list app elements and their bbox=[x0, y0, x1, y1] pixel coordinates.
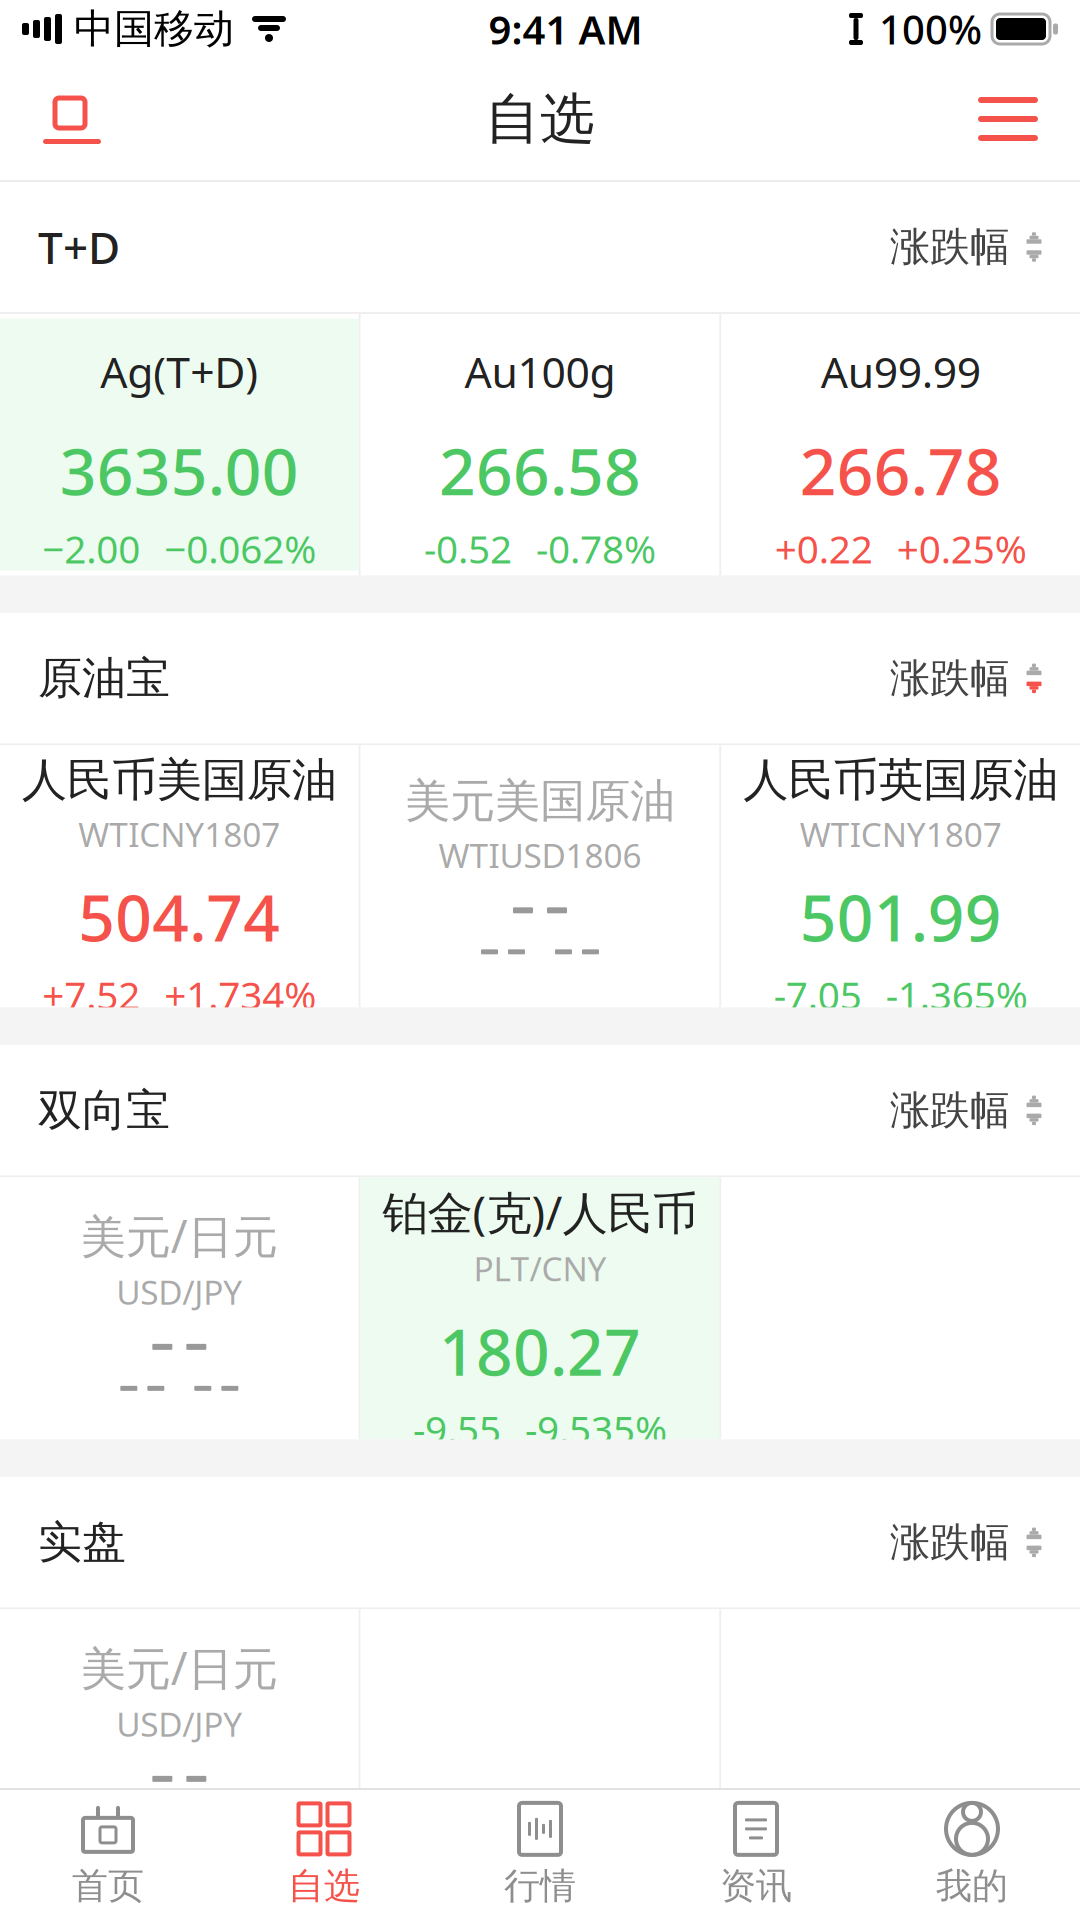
staticText: +7.52 bbox=[42, 969, 140, 1020]
staticText: 100% bbox=[879, 2, 982, 55]
staticText: 9:41 AM bbox=[488, 2, 642, 55]
staticText: -0.52 bbox=[424, 523, 512, 574]
staticText: 501.99 bbox=[800, 874, 1002, 959]
staticText: +0.22 bbox=[775, 523, 873, 574]
button[interactable]: Au99.99 bbox=[721, 319, 1080, 571]
staticText: 涨跌幅 bbox=[890, 654, 1010, 703]
staticText: 自选 bbox=[288, 1864, 360, 1908]
button[interactable]: 美元美国原油 bbox=[361, 745, 719, 1007]
staticText: 双向宝 bbox=[38, 1083, 170, 1137]
button[interactable]: 美元/日元 bbox=[0, 1609, 359, 1871]
staticText: −2.00 bbox=[42, 523, 140, 574]
staticText: 3635.00 bbox=[60, 428, 299, 513]
staticText: 266.78 bbox=[800, 428, 1002, 513]
button[interactable]: 编辑 bbox=[22, 69, 122, 169]
staticText: +1.734% bbox=[164, 969, 316, 1020]
staticText: 涨跌幅 bbox=[890, 1086, 1010, 1135]
staticText: 美元美国原油 bbox=[405, 773, 675, 829]
button[interactable]: T+D bbox=[0, 182, 1080, 312]
staticText: 人民币美国原油 bbox=[22, 752, 337, 808]
staticText: -7.05 bbox=[774, 969, 862, 1020]
staticText: 中国移动 bbox=[74, 4, 234, 53]
staticText: 180.27 bbox=[439, 1308, 641, 1393]
staticText: 首页 bbox=[72, 1864, 144, 1908]
staticText: 自选 bbox=[485, 85, 595, 152]
staticText: 行情 bbox=[504, 1864, 576, 1908]
staticText: 铂金(克)/人民币 bbox=[382, 1182, 697, 1242]
staticText: -9.535% bbox=[525, 1403, 667, 1455]
button[interactable]: 人民币美国原油 bbox=[0, 745, 359, 1007]
button[interactable]: 美元/日元 bbox=[0, 1177, 359, 1439]
staticText: USD/JPY bbox=[116, 1270, 242, 1314]
staticText: 人民币英国原油 bbox=[743, 752, 1058, 808]
staticText: 504.74 bbox=[78, 874, 280, 959]
button[interactable]: 铂金(克)/人民币 bbox=[361, 1177, 719, 1439]
staticText: -1.365% bbox=[886, 969, 1028, 1020]
button[interactable]: 自选 bbox=[216, 1790, 432, 1920]
button[interactable]: 双向宝 bbox=[0, 1045, 1080, 1175]
staticText: WTICNY1807 bbox=[78, 812, 280, 856]
staticText: 美元/日元 bbox=[81, 1637, 278, 1698]
staticText: PLT/CNY bbox=[473, 1246, 606, 1290]
staticText: 实盘 bbox=[38, 1515, 126, 1569]
staticText: 资讯 bbox=[720, 1864, 792, 1908]
button[interactable]: 资讯 bbox=[648, 1790, 864, 1920]
button[interactable]: 人民币英国原油 bbox=[721, 745, 1080, 1007]
staticText: 涨跌幅 bbox=[890, 222, 1010, 271]
button[interactable]: 原油宝 bbox=[0, 613, 1080, 743]
staticText: USD/JPY bbox=[116, 1702, 242, 1746]
staticText: WTICNY1807 bbox=[800, 812, 1002, 856]
staticText: WTIUSD1806 bbox=[438, 833, 641, 877]
button[interactable]: 菜单 bbox=[958, 69, 1058, 169]
staticText: -0.78% bbox=[536, 523, 656, 574]
staticText: Au100g bbox=[464, 343, 615, 400]
staticText: +0.25% bbox=[897, 523, 1027, 574]
button[interactable]: Ag(T+D) bbox=[0, 319, 359, 571]
staticText: 涨跌幅 bbox=[890, 1518, 1010, 1567]
staticText: 266.58 bbox=[439, 428, 641, 513]
staticText: 原油宝 bbox=[38, 651, 170, 705]
staticText: -9.55 bbox=[413, 1403, 501, 1455]
staticText: 我的 bbox=[936, 1864, 1008, 1908]
button[interactable]: Au100g bbox=[361, 319, 719, 571]
button[interactable]: 行情 bbox=[432, 1790, 648, 1920]
staticText: Au99.99 bbox=[821, 343, 981, 400]
staticText: −0.062% bbox=[164, 523, 316, 574]
staticText: 美元/日元 bbox=[81, 1205, 278, 1266]
button[interactable]: 实盘 bbox=[0, 1477, 1080, 1607]
staticText: T+D bbox=[38, 218, 120, 276]
staticText: Ag(T+D) bbox=[100, 343, 258, 400]
button[interactable]: 首页 bbox=[0, 1790, 216, 1920]
button[interactable]: 我的 bbox=[864, 1790, 1080, 1920]
